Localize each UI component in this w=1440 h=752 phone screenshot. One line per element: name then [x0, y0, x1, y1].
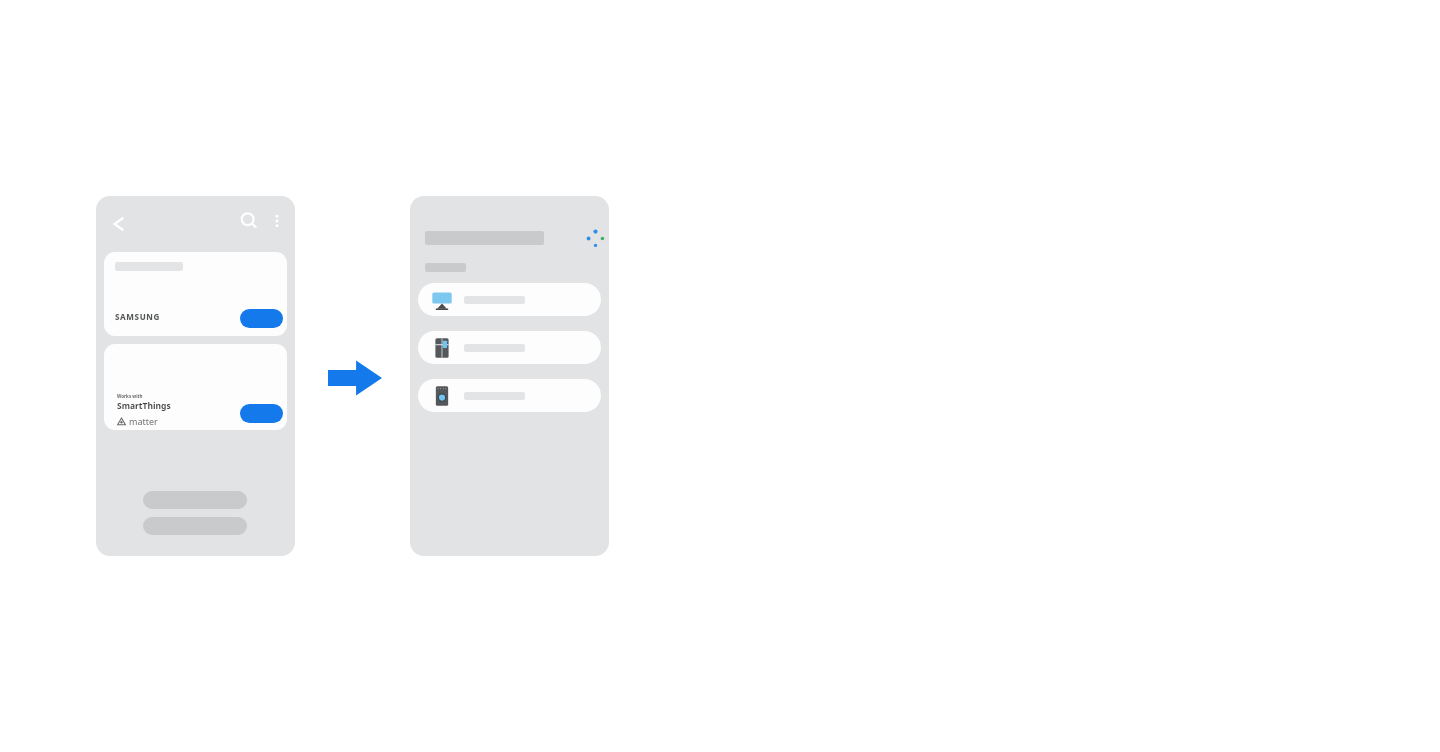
- staticText: SmartThings: [117, 400, 171, 412]
- button[interactable]: SAMSUNG: [104, 252, 287, 336]
- other: Next: [328, 358, 382, 398]
- button[interactable]: Works with: [104, 344, 287, 430]
- other: Loading: [585, 228, 606, 249]
- button[interactable]: [418, 331, 601, 364]
- button[interactable]: Toggle: [240, 309, 283, 328]
- button[interactable]: More options: [266, 210, 288, 232]
- button[interactable]: Search: [238, 210, 260, 232]
- button[interactable]: [143, 517, 247, 535]
- button[interactable]: Toggle: [240, 404, 283, 423]
- staticText: SAMSUNG: [115, 311, 160, 322]
- button[interactable]: [418, 283, 601, 316]
- staticText: Works with: [117, 393, 143, 399]
- staticText: matter: [129, 415, 158, 427]
- button[interactable]: Back: [104, 210, 132, 238]
- button[interactable]: [418, 379, 601, 412]
- button[interactable]: [143, 491, 247, 509]
